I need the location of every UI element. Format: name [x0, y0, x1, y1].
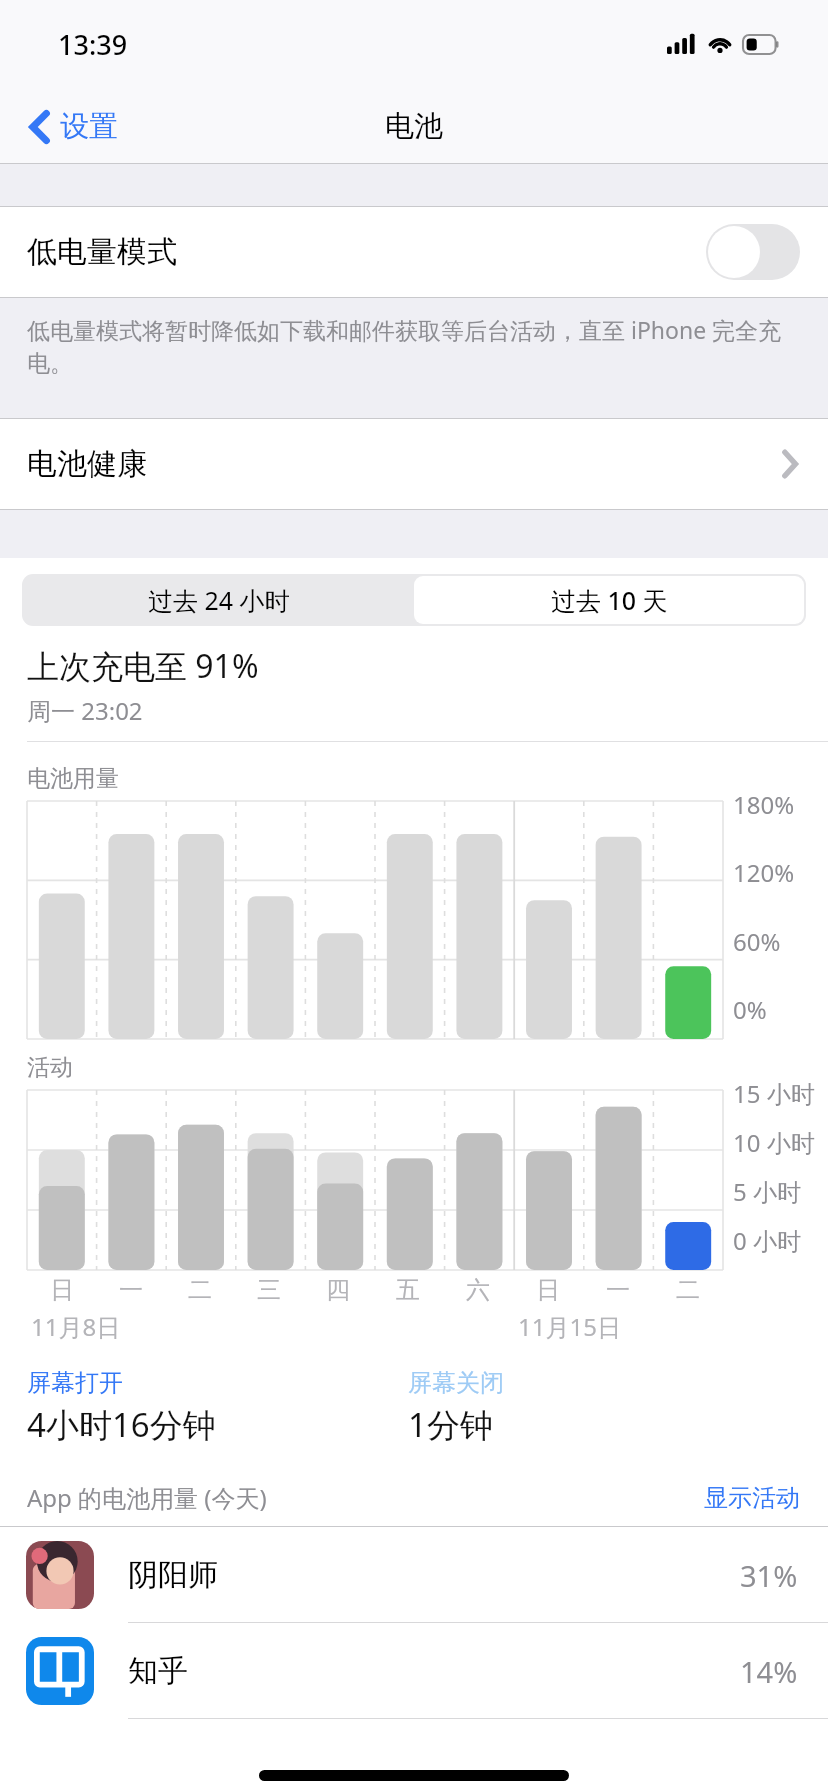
staticText: 一: [606, 1275, 630, 1305]
staticText: 设置: [60, 108, 118, 145]
staticText: 低电量模式将暂时降低如下载和邮件获取等后台活动，直至 iPhone 完全充电。: [27, 314, 798, 378]
staticText: 知乎: [128, 1652, 188, 1690]
staticText: 4小时16分钟: [27, 1402, 216, 1447]
staticText: 60%: [733, 925, 781, 958]
staticText: 上次充电至 91%: [27, 644, 259, 688]
staticText: 11月8日: [31, 1310, 121, 1343]
staticText: 120%: [733, 856, 795, 889]
staticText: 14%: [740, 1652, 798, 1691]
staticText: 活动: [27, 1053, 73, 1082]
staticText: 电池健康: [27, 445, 147, 483]
button[interactable]: 知乎: [0, 1623, 828, 1719]
staticText: 阴阳师: [128, 1556, 218, 1594]
staticText: 屏幕打开: [27, 1368, 123, 1398]
staticText: 周一 23:02: [27, 694, 143, 727]
button[interactable]: 阴阳师: [0, 1527, 828, 1623]
button[interactable]: 设置: [22, 102, 126, 151]
staticText: 11月15日: [518, 1310, 621, 1343]
staticText: 二: [676, 1275, 700, 1305]
staticText: 一: [119, 1275, 143, 1305]
staticText: 5 小时: [733, 1175, 801, 1208]
button[interactable]: 过去 10 天: [414, 576, 804, 624]
staticText: 显示活动: [704, 1483, 800, 1513]
staticText: 180%: [733, 788, 795, 821]
staticText: 日: [50, 1275, 74, 1305]
staticText: 10 小时: [733, 1126, 815, 1159]
button[interactable]: 低电量模式: [0, 206, 828, 298]
staticText: 过去 10 天: [551, 583, 668, 617]
staticText: 电池用量: [27, 764, 119, 793]
staticText: 二: [188, 1275, 212, 1305]
staticText: 1分钟: [408, 1402, 493, 1447]
staticText: 电池: [385, 108, 443, 145]
staticText: 0 小时: [733, 1224, 801, 1257]
staticText: 四: [326, 1275, 350, 1305]
staticText: 31%: [740, 1556, 798, 1595]
staticText: 日: [536, 1275, 560, 1305]
staticText: 三: [257, 1275, 281, 1305]
staticText: 0%: [733, 993, 767, 1026]
staticText: 低电量模式: [27, 233, 177, 271]
button[interactable]: Low Power Mode toggle: [706, 224, 800, 280]
button[interactable]: 过去 24 小时: [24, 576, 414, 624]
staticText: 屏幕关闭: [408, 1368, 504, 1398]
staticText: 15 小时: [733, 1077, 815, 1110]
staticText: App 的电池用量 (今天): [27, 1481, 267, 1514]
staticText: 五: [396, 1275, 420, 1305]
staticText: 13:39: [58, 26, 128, 63]
staticText: 过去 24 小时: [148, 583, 290, 617]
staticText: 六: [466, 1275, 490, 1305]
button[interactable]: 电池健康: [0, 418, 828, 510]
button[interactable]: 显示活动: [704, 1483, 800, 1513]
